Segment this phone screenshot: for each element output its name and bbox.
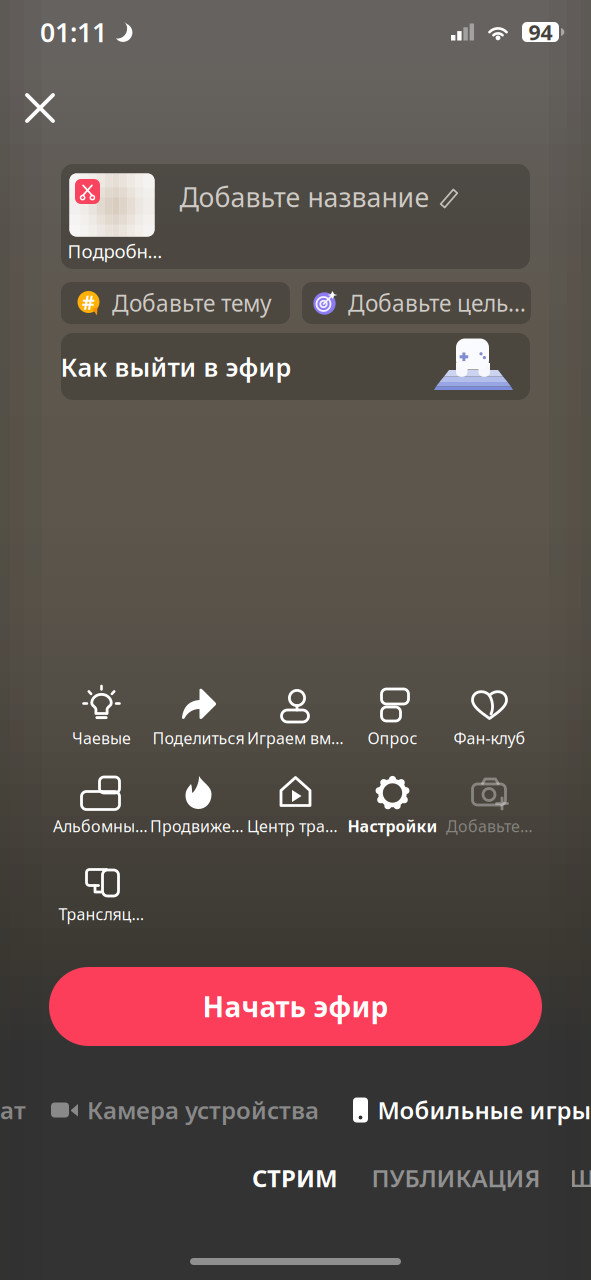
button[interactable]: Центр транс… <box>247 770 344 843</box>
staticText: 01:11 <box>40 14 107 50</box>
staticText: Играем вмес… <box>247 727 344 749</box>
staticText: # <box>82 289 95 315</box>
staticText: СТРИМ <box>252 1162 338 1194</box>
button[interactable]: Закрыть <box>14 82 66 134</box>
staticText: Добавьте… <box>446 815 533 837</box>
staticText: Опрос <box>367 727 417 749</box>
staticText: Трансляц… <box>58 903 144 925</box>
staticText: Начать эфир <box>202 988 388 1025</box>
staticText: Фан-клуб <box>453 727 525 749</box>
button[interactable]: Опрос <box>344 682 441 755</box>
staticText: Ш <box>569 1162 591 1194</box>
staticText: Камера устройства <box>87 1094 319 1126</box>
button[interactable]: Поделиться <box>150 682 247 755</box>
staticText: Центр транс… <box>247 815 344 837</box>
button[interactable]: Трансляц… <box>53 858 150 931</box>
staticText: Чаевые <box>72 727 131 749</box>
button[interactable]: Камера устройства <box>51 1088 319 1132</box>
button[interactable]: Добавьте цель… <box>302 282 531 324</box>
staticText: Как выйти в эфир <box>60 350 291 384</box>
staticText: Альбомный… <box>53 815 150 837</box>
button[interactable]: Как выйти в эфир <box>61 333 530 400</box>
staticText: ПУБЛИКАЦИЯ <box>371 1162 540 1194</box>
button[interactable]: Альбомный… <box>53 770 150 843</box>
button[interactable]: Настройки <box>344 770 441 843</box>
staticText: Добавьте название <box>179 179 429 215</box>
button[interactable]: Мобильные игры <box>352 1088 591 1132</box>
staticText: Добавьте цель… <box>348 288 526 318</box>
button[interactable]: Играем вмес… <box>247 682 344 755</box>
button[interactable]: ПУБЛИКАЦИЯ <box>371 1156 540 1200</box>
staticText: Настройки <box>347 815 437 837</box>
staticText: 94 <box>528 18 552 46</box>
staticText: Мобильные игры <box>377 1094 591 1126</box>
button[interactable]: Продвижение <box>150 770 247 843</box>
button[interactable]: Фан-клуб <box>441 682 538 755</box>
staticText: Поделиться <box>152 727 244 749</box>
staticText: Добавьте тему <box>112 288 272 318</box>
button[interactable]: Начать эфир <box>49 967 542 1046</box>
button[interactable]: Подробн… <box>61 164 530 269</box>
button[interactable]: # <box>61 282 290 324</box>
staticText: ат <box>0 1094 26 1126</box>
staticText: Подробн… <box>67 239 162 263</box>
button[interactable]: Добавьте… <box>441 770 538 843</box>
button[interactable]: Чаевые <box>53 682 150 755</box>
staticText: Продвижение <box>150 815 247 837</box>
button[interactable]: Ш <box>569 1156 591 1200</box>
button[interactable]: СТРИМ <box>252 1156 338 1200</box>
